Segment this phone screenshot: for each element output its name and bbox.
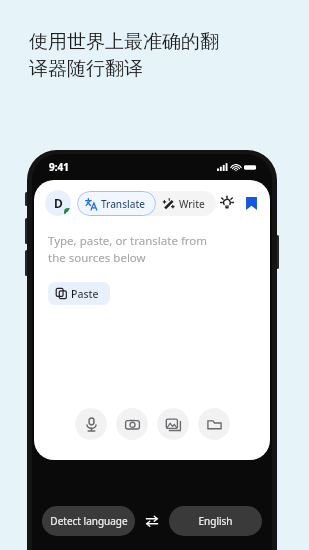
staticText: Paste (71, 287, 99, 301)
button[interactable]: Account (45, 190, 71, 216)
staticText: Write (179, 197, 205, 211)
staticText: D (54, 195, 63, 211)
button[interactable]: Voice input (75, 408, 107, 440)
staticText: Translate (101, 197, 145, 211)
button[interactable]: Camera (116, 408, 148, 440)
button[interactable]: Paste (48, 282, 110, 305)
button[interactable]: Write (156, 191, 216, 216)
button[interactable]: Swap languages (135, 506, 169, 536)
button[interactable]: Images (157, 408, 189, 440)
staticText: English (198, 514, 233, 528)
button[interactable]: Saved (244, 192, 259, 214)
button[interactable]: Detect language (42, 506, 135, 536)
staticText: Type, paste, or translate from the sourc… (48, 233, 208, 266)
button[interactable]: English (169, 506, 262, 536)
staticText: 9:41 (49, 160, 69, 174)
button[interactable]: Documents (198, 408, 230, 440)
staticText: 使用世界上最准确的翻 译器随行翻译 (29, 30, 219, 81)
staticText: Detect language (50, 514, 128, 528)
button[interactable]: Translate (77, 191, 156, 216)
button[interactable]: Tips (216, 192, 238, 214)
